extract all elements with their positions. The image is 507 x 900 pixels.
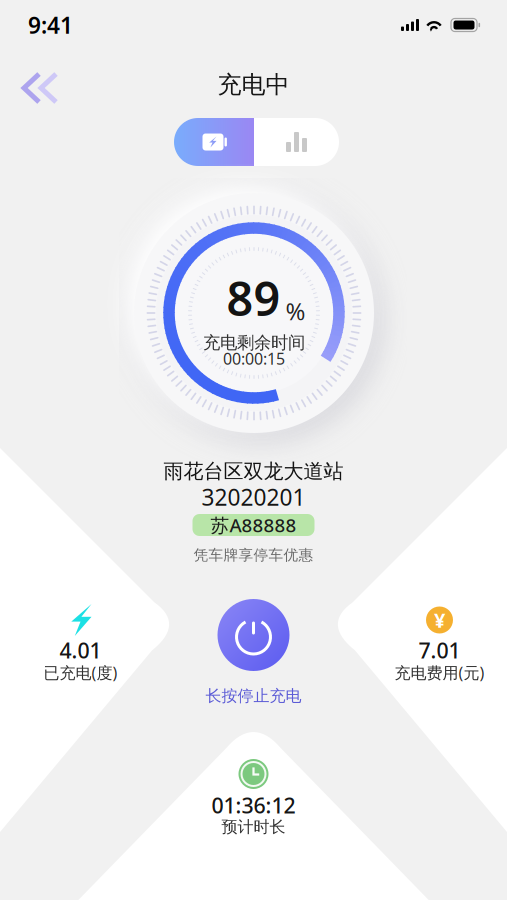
staticText: ¥: [434, 607, 445, 633]
button[interactable]: Charging: [174, 118, 254, 166]
staticText: %: [285, 295, 305, 327]
staticText: 00:00:15: [223, 348, 285, 369]
staticText: 已充电(度): [43, 662, 117, 683]
staticText: 雨花台区双龙大道站: [163, 459, 343, 484]
staticText: 32020201: [201, 482, 305, 512]
staticText: 充电剩余时间: [203, 332, 305, 353]
staticText: 充电中: [217, 70, 289, 99]
staticText: 凭车牌享停车优惠: [193, 546, 313, 564]
button[interactable]: Back: [7, 66, 73, 110]
staticText: 7.01: [418, 636, 460, 664]
staticText: 充电费用(元): [394, 662, 484, 683]
staticText: 89: [226, 267, 280, 329]
staticText: 预计时长: [221, 817, 285, 837]
staticText: 01:36:12: [211, 791, 295, 819]
staticText: 苏A88888: [210, 513, 296, 537]
staticText: 9:41: [28, 10, 73, 40]
staticText: 4.01: [59, 636, 101, 664]
button[interactable]: Statistics: [254, 118, 339, 166]
button[interactable]: Stop charging: [0, 598, 507, 672]
staticText: 长按停止充电: [205, 686, 301, 706]
